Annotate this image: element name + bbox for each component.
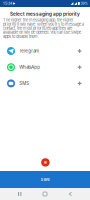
staticText: WhatsApp — [19, 64, 40, 70]
staticText: 15:34 — [3, 1, 12, 6]
staticText: SMS — [19, 81, 29, 86]
staticText: Select messaging app priority — [10, 11, 80, 17]
button[interactable]: Home — [39, 188, 51, 200]
button[interactable]: Recent apps — [14, 188, 25, 200]
button[interactable]: Save — [0, 171, 90, 188]
button[interactable]: Record — [41, 158, 50, 167]
button[interactable]: Back — [65, 188, 76, 200]
staticText: Telegram — [19, 48, 39, 54]
staticText: Save — [40, 177, 49, 182]
button[interactable]: SMS — [0, 75, 90, 91]
button[interactable]: WhatsApp — [0, 59, 90, 75]
button[interactable]: Telegram — [0, 43, 90, 59]
staticText: The higher the messaging app, the higher… — [3, 18, 84, 39]
staticText: 39% — [80, 1, 87, 6]
